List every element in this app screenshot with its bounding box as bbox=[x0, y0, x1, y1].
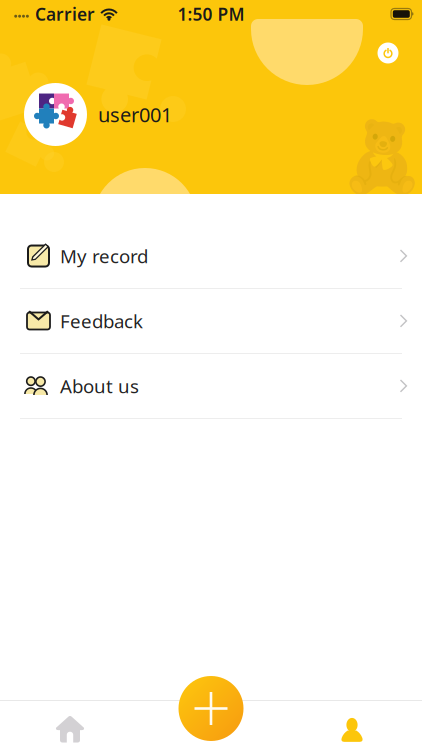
button[interactable]: Home bbox=[0, 701, 140, 750]
staticText: Feedback bbox=[60, 309, 143, 333]
button[interactable]: Add bbox=[178, 676, 243, 741]
staticText: Carrier bbox=[35, 2, 95, 25]
staticText: 🧸 bbox=[339, 118, 422, 197]
button[interactable]: Feedback bbox=[0, 289, 422, 353]
button[interactable]: About us bbox=[0, 354, 422, 418]
button[interactable]: Profile bbox=[282, 701, 422, 750]
staticText: About us bbox=[60, 374, 139, 398]
staticText: user001 bbox=[98, 101, 172, 128]
staticText: My record bbox=[60, 244, 148, 268]
button[interactable]: Power bbox=[371, 36, 405, 70]
button[interactable]: My record bbox=[0, 224, 422, 288]
staticText: 1:50 PM bbox=[177, 2, 244, 25]
